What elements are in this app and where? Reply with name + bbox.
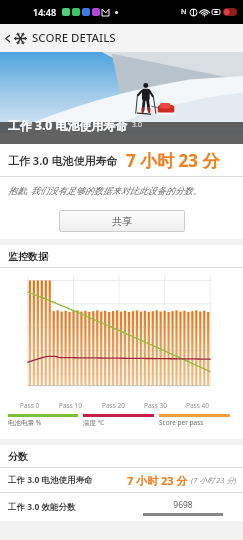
staticText: 工作 3.0 电池使用寿命 [8, 474, 93, 486]
staticText: 分数 [8, 450, 28, 463]
staticText: Pass 10 [59, 401, 82, 410]
staticText: N [181, 7, 187, 17]
staticText: 工作 3.0 电池使用寿命 [8, 153, 118, 168]
button[interactable]: 共享 [59, 210, 185, 232]
staticText: 9698 [173, 499, 193, 511]
button[interactable]: Back to Score Details [0, 24, 243, 52]
staticText: 7 小时 23 分 [126, 149, 220, 172]
staticText: 共享 [112, 215, 132, 228]
staticText: Pass 30 [144, 401, 167, 410]
staticText: Pass 40 [186, 401, 209, 410]
staticText: Pass 20 [102, 401, 125, 410]
staticText: 电池电量 % [8, 418, 42, 427]
staticText: 工作 3.0 电池使用寿命 [8, 117, 128, 133]
staticText: Pass 0 [20, 401, 40, 410]
staticText: SCORE DETAILS [32, 30, 116, 46]
staticText: 监控数据 [8, 250, 48, 263]
button[interactable]: 工作 3.0 电池使用寿命 [0, 468, 243, 492]
button[interactable]: 工作 3.0 效能分数 [0, 493, 243, 521]
staticText: (7 小时 23 分) [191, 475, 237, 485]
staticText: 3.0 [132, 120, 142, 130]
staticText: 14:48 [33, 6, 57, 18]
staticText: 温度 ℃ [83, 418, 105, 427]
staticText: 7 小时 23 分 [127, 473, 188, 488]
staticText: 抱歉, 我们没有足够的数据来对比此设备的分数。 [8, 184, 202, 196]
staticText: 工作 3.0 效能分数 [8, 501, 76, 513]
staticText: Score per pass [159, 418, 204, 427]
